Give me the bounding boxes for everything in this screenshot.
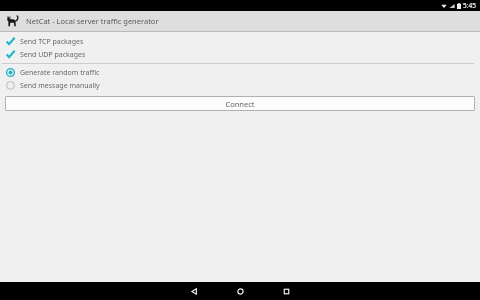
staticText: Connect bbox=[225, 99, 255, 109]
button[interactable]: Connect bbox=[5, 96, 475, 111]
button[interactable]: Back bbox=[177, 282, 211, 300]
button[interactable]: Send TCP packages bbox=[0, 35, 480, 48]
staticText: 5:45 bbox=[463, 1, 476, 10]
button[interactable]: Home bbox=[223, 282, 257, 300]
staticText: Send TCP packages bbox=[20, 37, 84, 47]
button[interactable]: Send message manually bbox=[0, 79, 480, 92]
staticText: Send message manually bbox=[20, 81, 100, 91]
staticText: NetCat - Local server traffic generator bbox=[26, 16, 159, 26]
staticText: Generate random traffic bbox=[20, 68, 100, 78]
button[interactable]: Send UDP packages bbox=[0, 48, 480, 61]
button[interactable]: Recent apps bbox=[269, 282, 303, 300]
button[interactable]: Generate random traffic bbox=[0, 66, 480, 79]
staticText: Send UDP packages bbox=[20, 50, 86, 60]
